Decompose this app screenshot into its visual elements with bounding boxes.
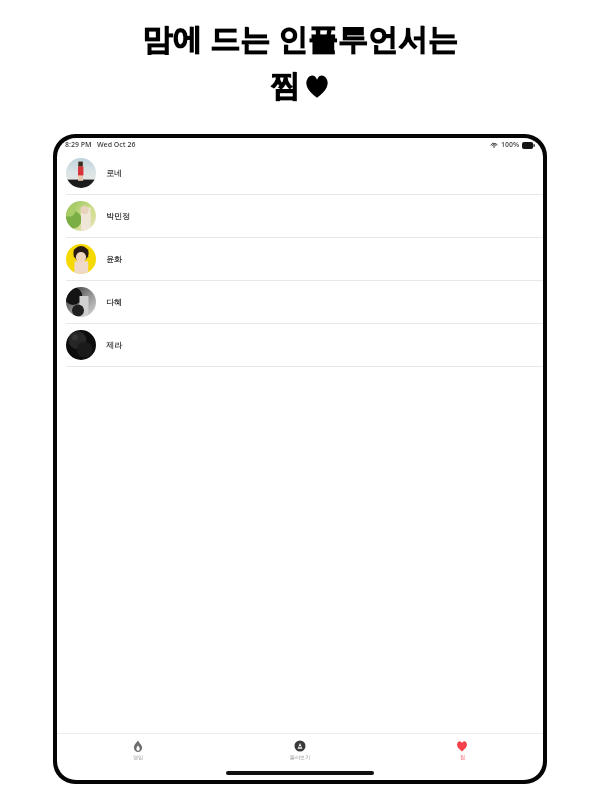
staticText: Wed Oct 26 [97, 140, 136, 150]
button[interactable]: 찜 [381, 734, 543, 766]
staticText: 8:29 PM [65, 140, 92, 150]
staticText: 찜 [270, 67, 300, 105]
staticText: 찜 [460, 754, 465, 760]
button[interactable]: 둘러보기 [219, 734, 381, 766]
staticText: 둘러보기 [290, 754, 310, 760]
staticText: 박민정 [106, 211, 130, 221]
button[interactable]: 로네 [57, 152, 543, 195]
button[interactable]: 영입 [57, 734, 219, 766]
staticText: 영입 [133, 754, 143, 760]
staticText: 로네 [106, 168, 122, 178]
staticText: 윤화 [106, 254, 122, 264]
staticText: 제라 [106, 340, 122, 350]
staticText: 맘에 드는 인플루언서는 [142, 18, 458, 59]
button[interactable]: 제라 [57, 324, 543, 367]
button[interactable]: 윤화 [57, 238, 543, 281]
button[interactable]: 박민정 [57, 195, 543, 238]
staticText: 다혜 [106, 297, 122, 307]
staticText: 100% [501, 140, 520, 150]
button[interactable]: 다혜 [57, 281, 543, 324]
